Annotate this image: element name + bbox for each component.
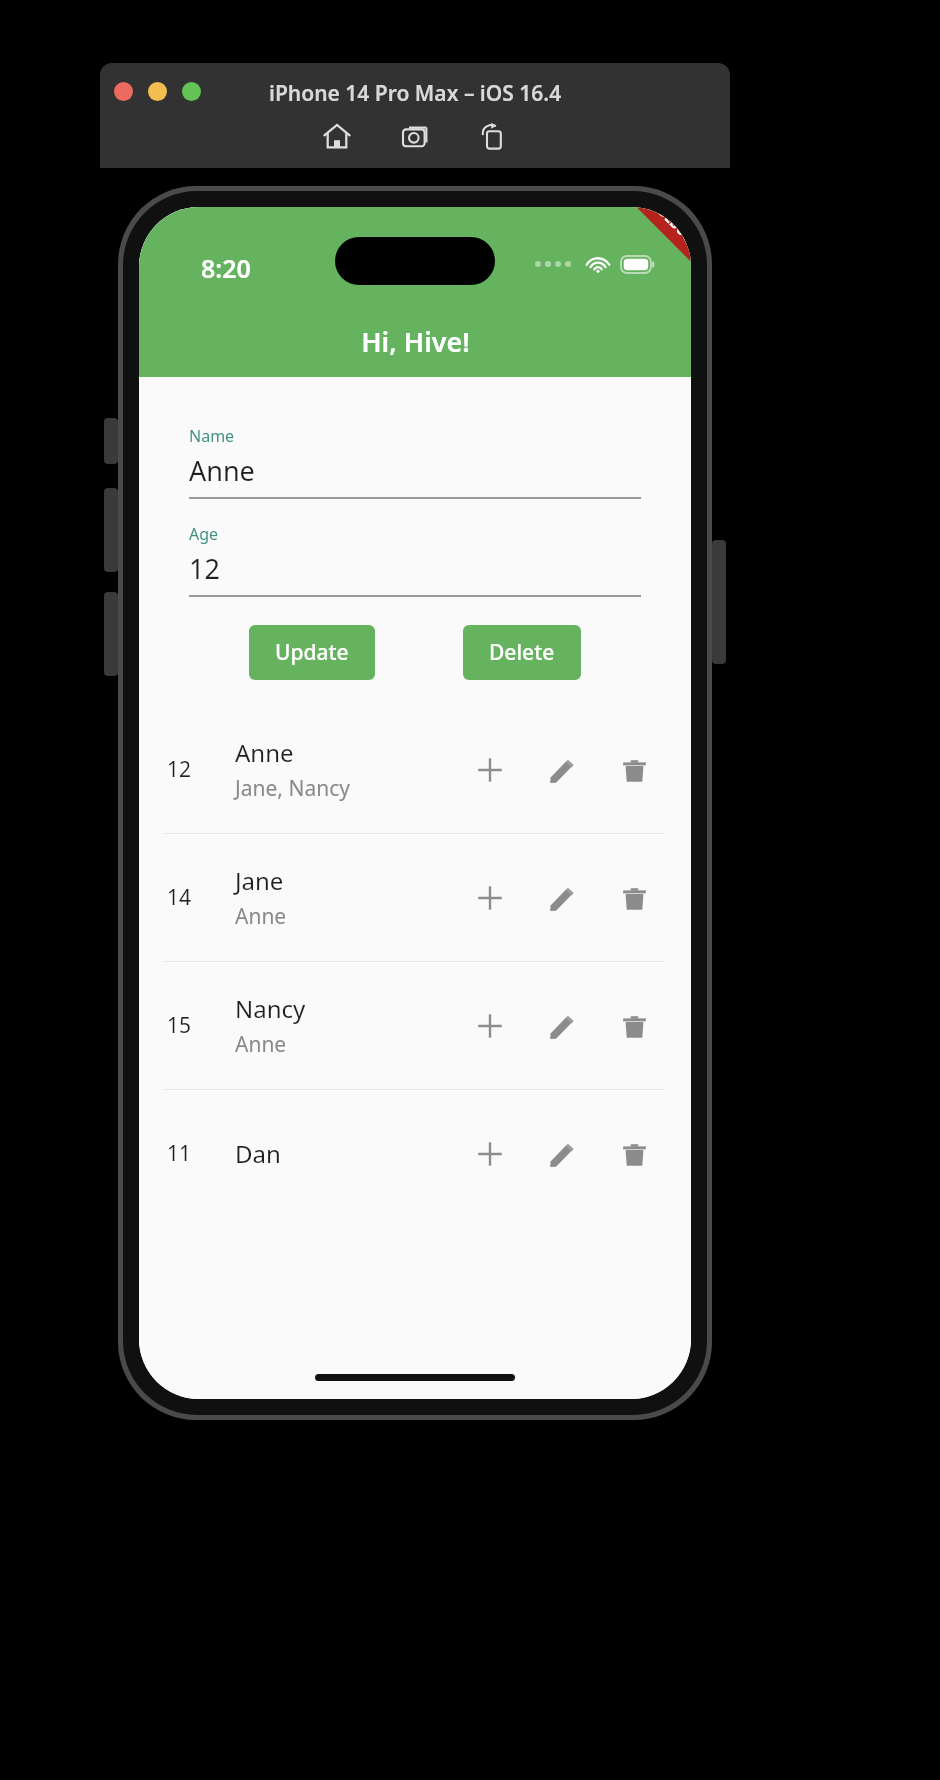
button[interactable]: Delete [603,1123,665,1185]
button[interactable]: Edit [531,995,593,1057]
button[interactable]: Edit [531,1123,593,1185]
staticText: 14 [167,883,192,912]
button[interactable]: 14 [139,834,691,961]
button[interactable]: 15 [139,962,691,1089]
staticText: 8:20 [201,251,251,285]
staticText: Name [189,425,235,447]
staticText: Anne [189,452,255,489]
button[interactable]: Edit [531,739,593,801]
staticText: Dan [235,1137,281,1170]
button[interactable]: Delete [603,995,665,1057]
staticText: Anne [235,902,287,931]
button[interactable]: Update [249,625,375,680]
staticText: Nancy [235,992,306,1025]
staticText: Jane, Nancy [235,774,350,803]
staticText: DEBUG [654,207,691,247]
button[interactable]: Add [459,739,521,801]
button[interactable]: Delete [603,867,665,929]
button[interactable]: Delete [463,625,581,680]
button[interactable]: Edit [531,867,593,929]
staticText: Jane [235,864,284,897]
button[interactable]: 11 [139,1090,691,1217]
button[interactable]: Add [459,1123,521,1185]
staticText: 12 [167,755,192,784]
button[interactable]: Add [459,867,521,929]
staticText: Update [275,638,349,667]
button[interactable]: Add [459,995,521,1057]
button[interactable]: Home [322,121,352,151]
button[interactable]: Rotate [478,121,508,151]
staticText: Anne [235,736,294,769]
staticText: iPhone 14 Pro Max – iOS 16.4 [269,79,562,108]
staticText: Delete [489,638,555,667]
staticText: Age [189,523,219,545]
button[interactable]: 12 [139,706,691,833]
staticText: 12 [189,550,220,587]
staticText: 15 [167,1011,192,1040]
staticText: 11 [167,1139,192,1168]
staticText: Hi, Hive! [361,323,470,360]
staticText: Anne [235,1030,287,1059]
button[interactable]: Screenshot [400,121,430,151]
button[interactable]: Delete [603,739,665,801]
